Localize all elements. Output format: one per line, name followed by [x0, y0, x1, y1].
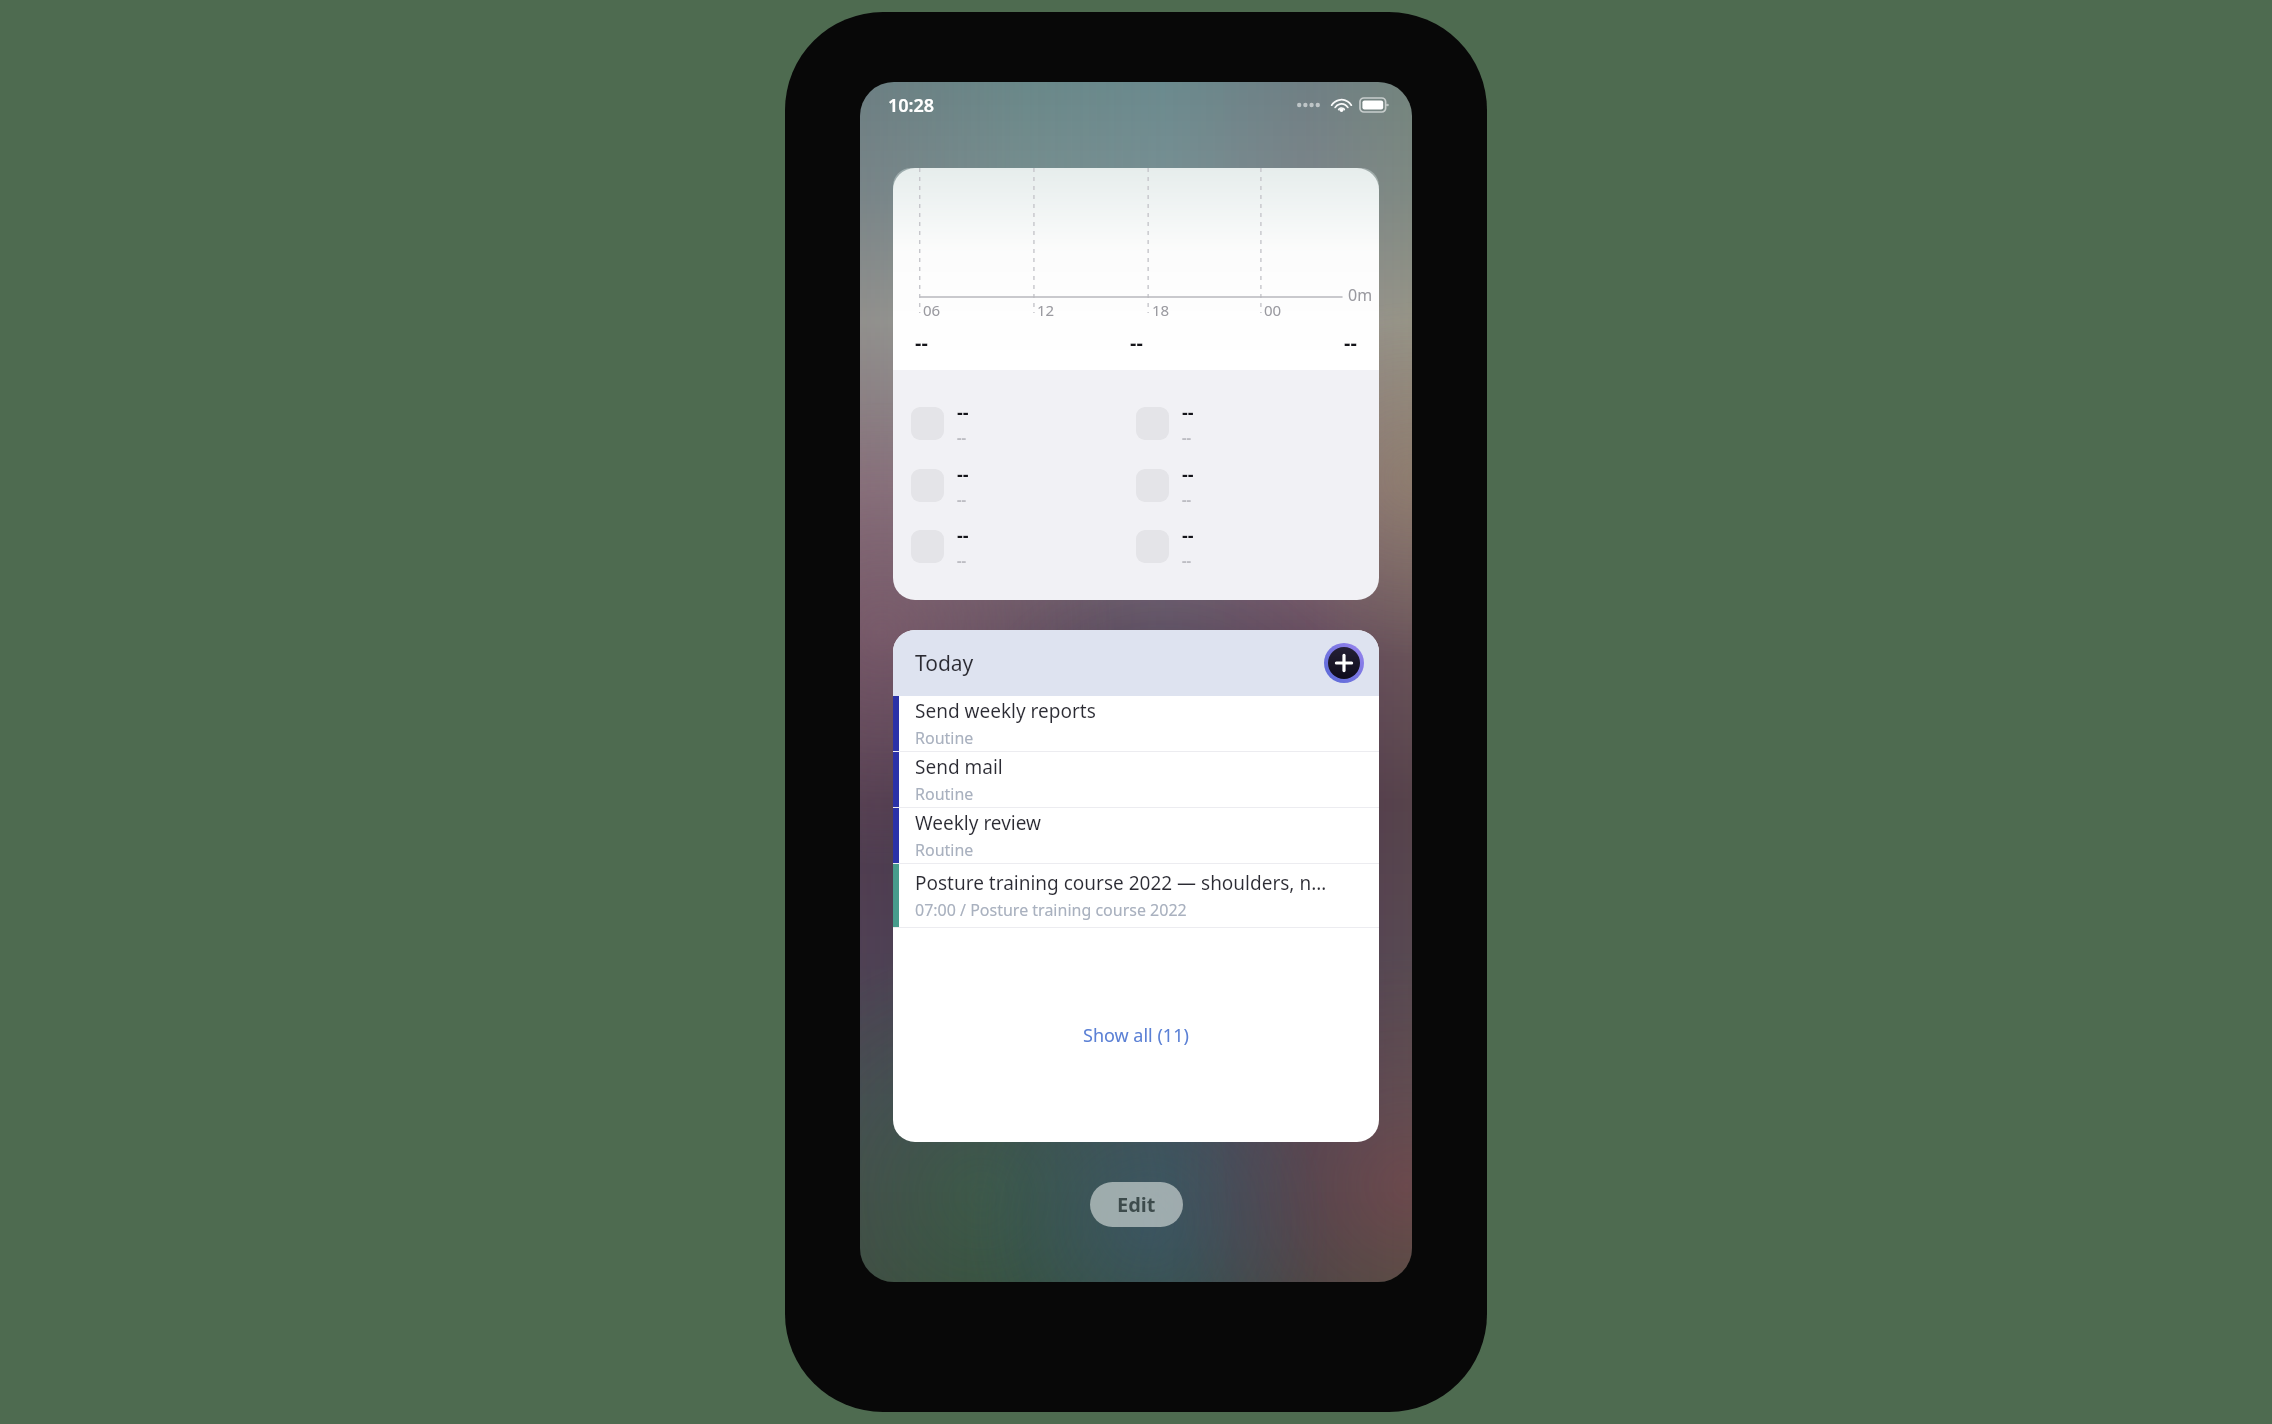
staticText: --	[1130, 329, 1143, 356]
staticText: Routine	[915, 783, 974, 805]
staticText: Weekly review	[915, 810, 1042, 836]
staticText: --	[1182, 523, 1194, 548]
staticText: --	[1182, 400, 1194, 425]
staticText: 18	[1152, 300, 1170, 320]
staticText: --	[957, 490, 966, 509]
button[interactable]: Add task	[1324, 643, 1364, 683]
button[interactable]: Today	[893, 630, 1379, 696]
staticText: --	[957, 551, 966, 570]
button[interactable]: Show all (11)	[893, 928, 1379, 1142]
staticText: Edit	[1117, 1191, 1156, 1218]
staticText: --	[1182, 551, 1191, 570]
button[interactable]: --	[911, 462, 1136, 509]
button[interactable]: Send weekly reports	[893, 696, 1379, 751]
staticText: --	[1182, 428, 1191, 447]
button[interactable]: 06	[893, 168, 1379, 600]
staticText: Show all (11)	[1083, 1023, 1189, 1048]
button[interactable]: --	[911, 523, 1136, 570]
staticText: 06	[923, 300, 941, 320]
button[interactable]: Send mail	[893, 752, 1379, 807]
staticText: 07:00 / Posture training course 2022	[915, 899, 1187, 921]
staticText: Send mail	[915, 754, 1003, 780]
staticText: 0m	[1348, 284, 1373, 306]
staticText: Routine	[915, 839, 974, 861]
staticText: Search	[1119, 187, 1189, 217]
staticText: --	[1182, 462, 1194, 487]
staticText: Routine	[915, 727, 974, 749]
staticText: --	[957, 523, 969, 548]
staticText: Send weekly reports	[915, 698, 1096, 724]
staticText: --	[1344, 329, 1357, 356]
staticText: --	[957, 428, 966, 447]
staticText: 12	[1037, 300, 1055, 320]
staticText: --	[915, 329, 928, 356]
staticText: 10:28	[888, 93, 935, 118]
staticText: Posture training course 2022 — shoulders…	[915, 870, 1327, 896]
staticText: Today	[915, 649, 974, 678]
button[interactable]: --	[911, 400, 1136, 447]
staticText: 00	[1264, 300, 1282, 320]
button[interactable]: --	[1136, 523, 1361, 570]
button[interactable]: Search	[893, 168, 1379, 236]
staticText: --	[1182, 490, 1191, 509]
button[interactable]: --	[1136, 400, 1361, 447]
button[interactable]: --	[1136, 462, 1361, 509]
button[interactable]: Edit	[1090, 1182, 1183, 1227]
staticText: --	[957, 462, 969, 487]
button[interactable]: Posture training course 2022 — shoulders…	[893, 864, 1379, 927]
button[interactable]: Weekly review	[893, 808, 1379, 863]
staticText: --	[957, 400, 969, 425]
